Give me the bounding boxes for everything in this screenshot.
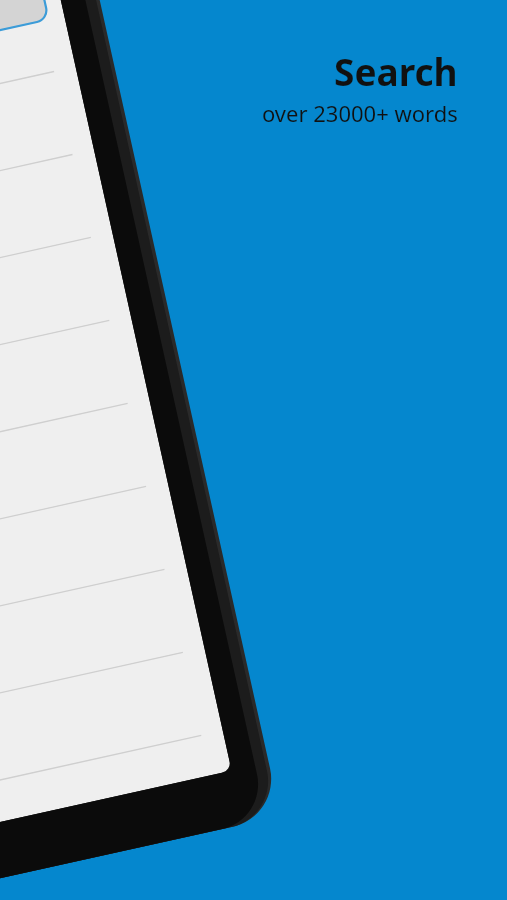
button[interactable]: Search over 23000+ words: [0, 0, 507, 900]
